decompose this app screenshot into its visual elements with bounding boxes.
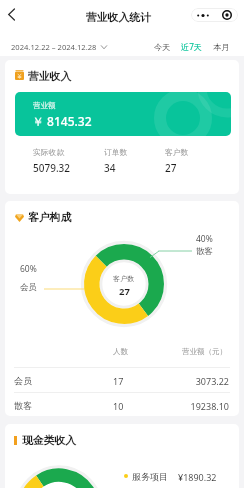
button[interactable]: Close: [215, 8, 238, 22]
staticText: 27: [119, 285, 130, 298]
staticText: 客户数: [113, 274, 134, 283]
staticText: ¥1890.32: [178, 471, 217, 483]
staticText: 人数: [113, 347, 128, 356]
staticText: 现金类收入: [22, 434, 76, 448]
button[interactable]: More options: [191, 8, 215, 22]
staticText: 10: [113, 400, 183, 412]
button[interactable]: 会员: [14, 368, 229, 393]
staticText: 34: [104, 161, 116, 175]
staticText: 订单数: [104, 147, 128, 157]
staticText: 会员: [20, 282, 37, 293]
button[interactable]: 2024.12.22 – 2024.12.28: [11, 39, 107, 54]
staticText: 服务项目: [132, 471, 168, 482]
staticText: 营业收入: [28, 70, 72, 84]
staticText: 19238.10: [183, 400, 229, 412]
staticText: 散客: [14, 400, 113, 411]
staticText: 27: [165, 161, 177, 175]
staticText: 5079.32: [33, 161, 71, 175]
staticText: 会员: [14, 375, 113, 386]
staticText: 17: [113, 375, 183, 387]
button[interactable]: 散客: [14, 393, 229, 416]
staticText: 营业额: [33, 101, 56, 110]
staticText: ￥ 8145.32: [32, 113, 92, 129]
staticText: 3073.22: [183, 375, 229, 387]
staticText: 60%: [20, 263, 37, 275]
button[interactable]: 本月: [208, 42, 235, 52]
staticText: 散客: [196, 246, 213, 257]
button[interactable]: Back: [2, 5, 21, 24]
button[interactable]: 近7天: [176, 41, 208, 52]
button[interactable]: 营业额: [15, 92, 231, 136]
staticText: 40%: [196, 233, 213, 245]
staticText: 2024.12.22 – 2024.12.28: [11, 42, 97, 52]
button[interactable]: 今天: [149, 42, 176, 52]
staticText: 客户数: [165, 147, 189, 157]
staticText: 营业收入统计: [86, 11, 151, 25]
staticText: 营业额（元）: [182, 347, 227, 356]
staticText: 客户构成: [28, 211, 72, 225]
staticText: 实际收款: [33, 147, 65, 157]
